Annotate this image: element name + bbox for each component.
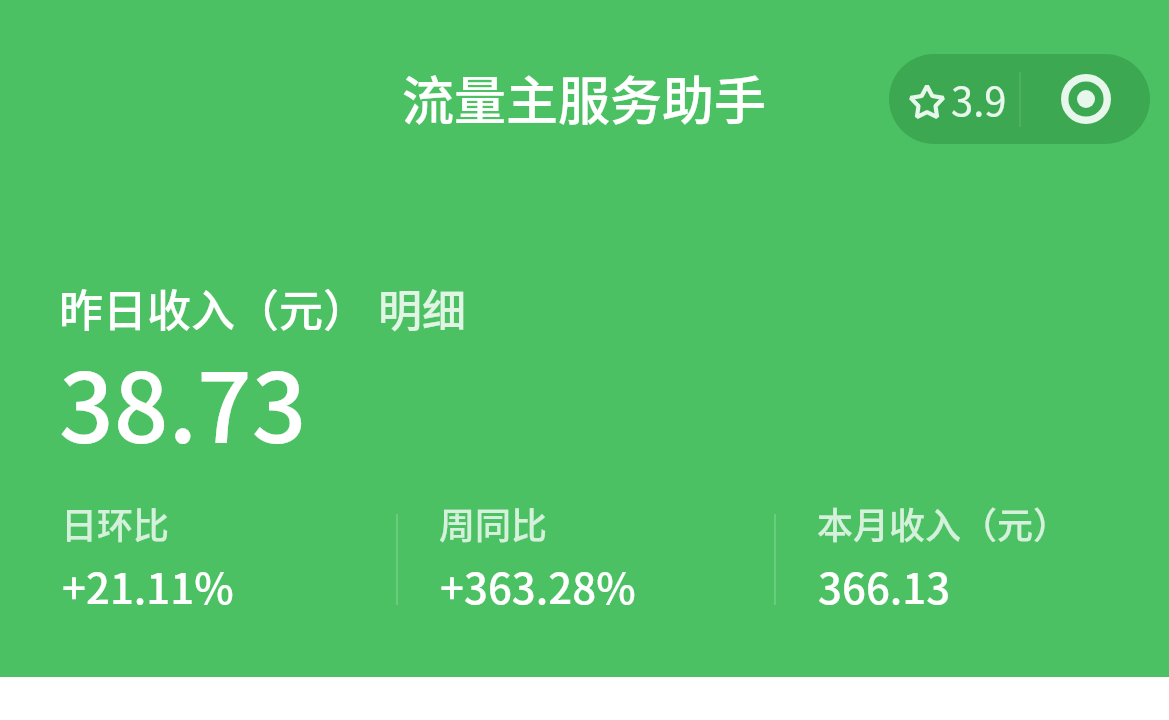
staticText: +363.28% (440, 555, 636, 616)
button[interactable]: More (1021, 54, 1150, 144)
staticText: 本月收入（元） (817, 497, 1070, 549)
staticText: 流量主服务助手 (402, 60, 767, 135)
staticText: 昨日收入（元） (59, 276, 367, 340)
staticText: 366.13 (818, 555, 951, 616)
staticText: 38.73 (59, 332, 307, 471)
button[interactable]: 日环比 (20, 497, 396, 617)
button[interactable]: 明细 (378, 276, 466, 340)
button[interactable]: Rating 3.9 (889, 54, 1019, 144)
staticText: 明细 (378, 276, 466, 340)
button[interactable]: 本月收入（元） (776, 497, 1152, 617)
staticText: +21.11% (62, 555, 234, 616)
staticText: 周同比 (439, 497, 548, 549)
button[interactable]: 周同比 (398, 497, 774, 617)
staticText: 3.9 (951, 70, 1007, 128)
staticText: 日环比 (61, 497, 170, 549)
